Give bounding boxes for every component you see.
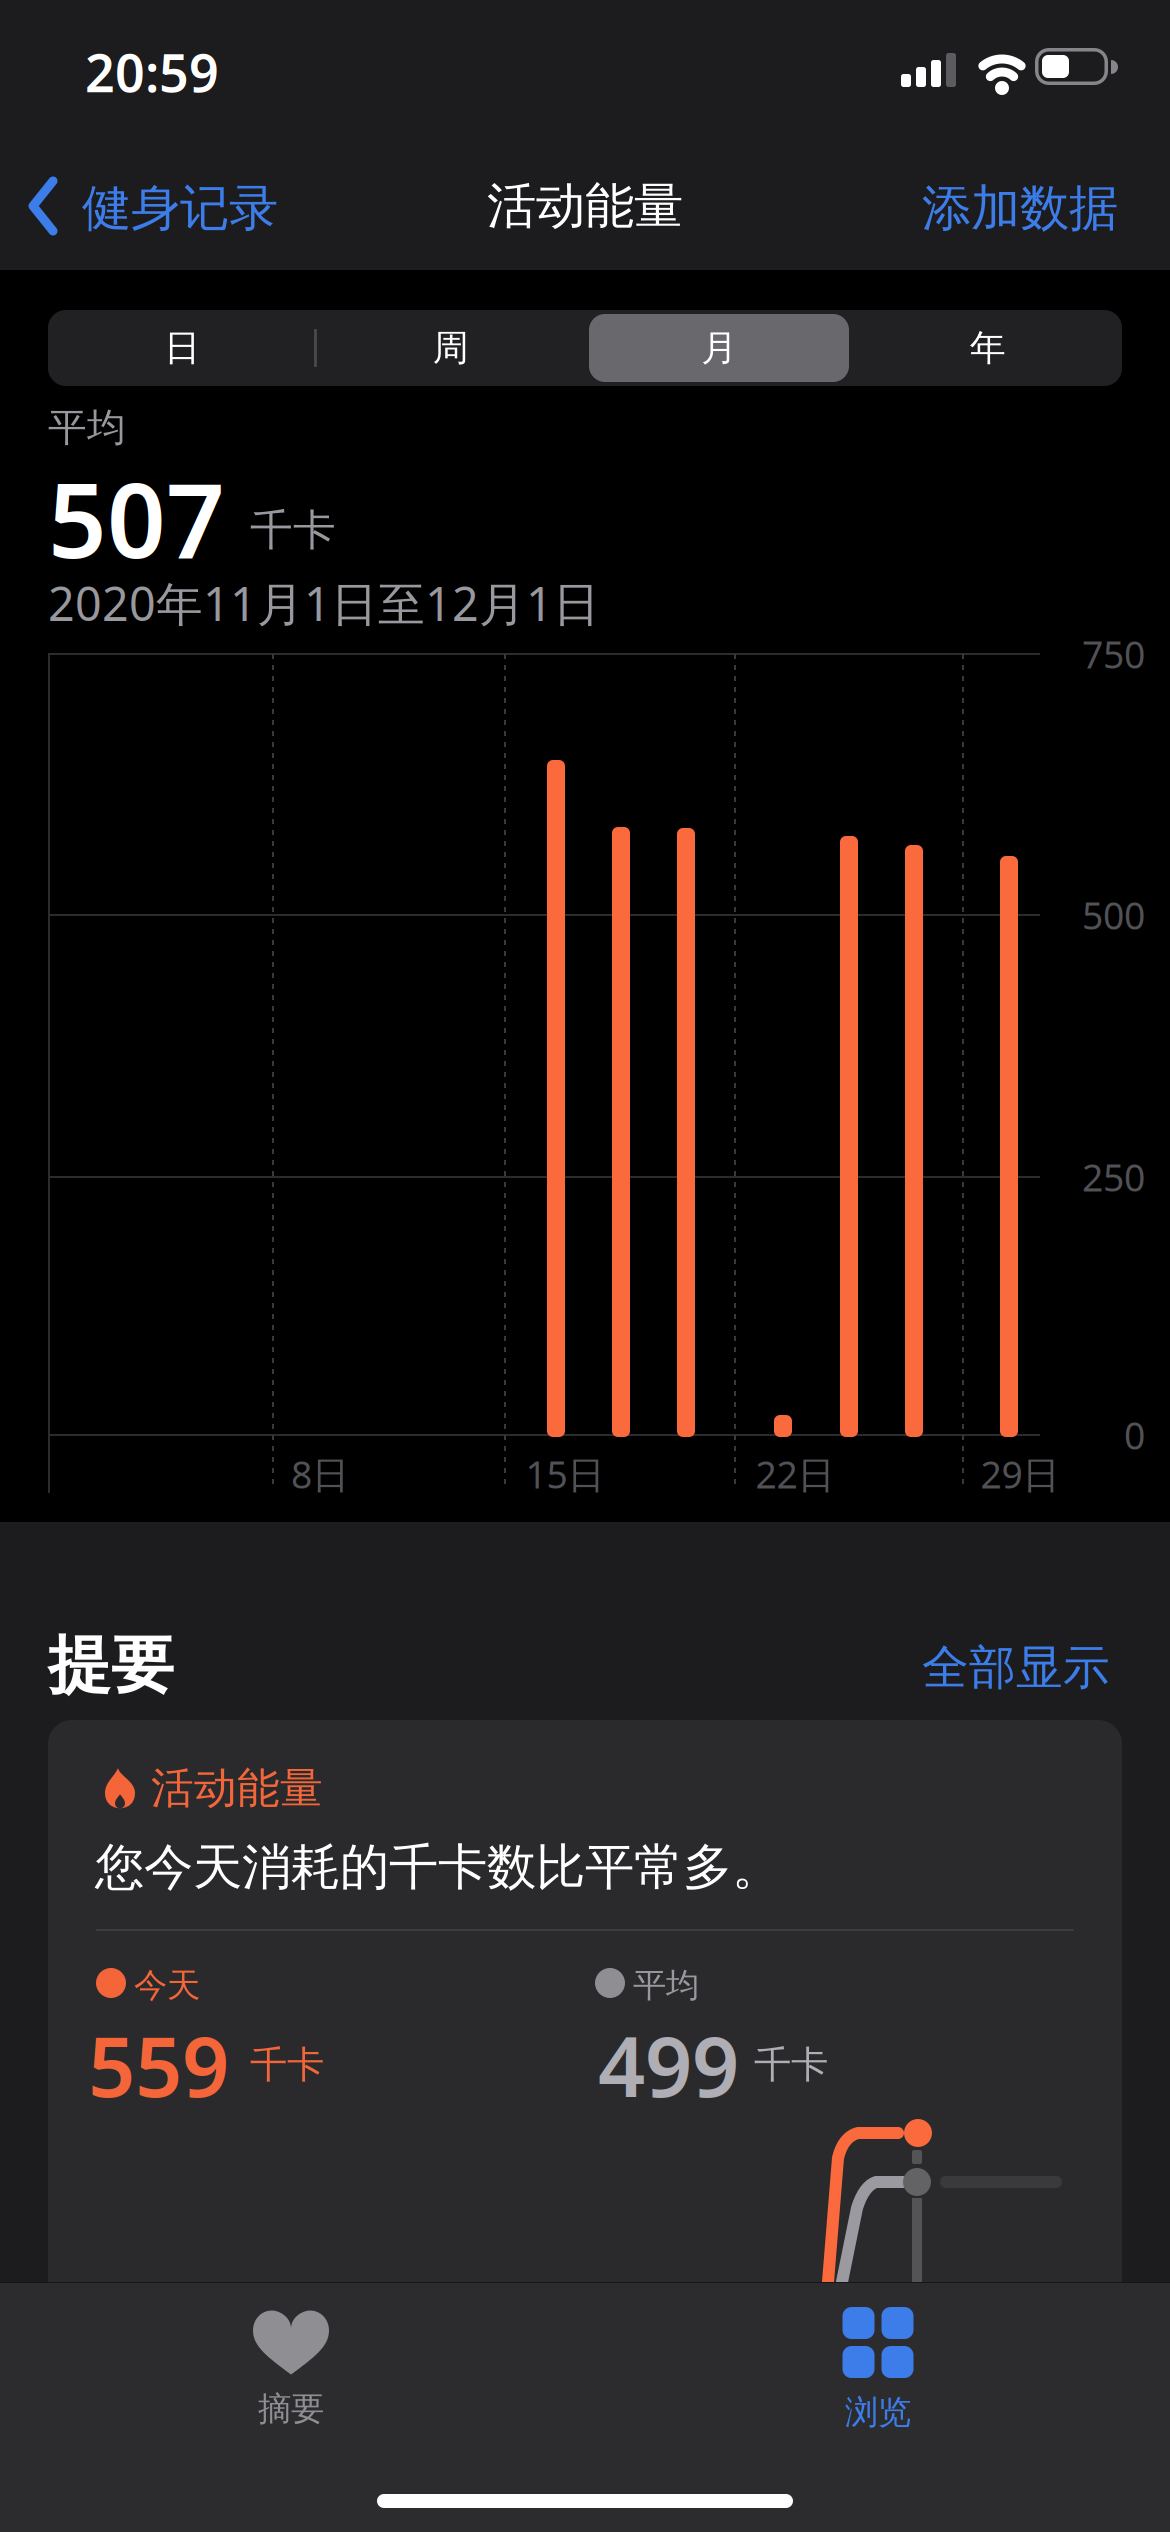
staticText: 千卡	[250, 504, 336, 556]
staticText: 千卡	[754, 2042, 828, 2088]
staticText: 15日	[525, 1449, 604, 1499]
button[interactable]: 全部显示	[922, 1639, 1110, 1696]
staticText: 499	[598, 2010, 739, 2120]
staticText: 日	[164, 326, 200, 370]
staticText: 8日	[291, 1449, 349, 1499]
staticText: 月	[701, 326, 737, 370]
button[interactable]: 活动能量	[48, 1720, 1122, 2332]
staticText: 2020年11月1日至12月1日	[48, 572, 600, 634]
staticText: 摘要	[258, 2388, 324, 2429]
button[interactable]: 周	[316, 310, 585, 386]
staticText: 750	[1082, 629, 1145, 679]
staticText: 全部显示	[922, 1639, 1110, 1696]
staticText: 20:59	[85, 37, 219, 107]
button[interactable]: 摘要	[91, 2300, 491, 2440]
staticText: 您今天消耗的千卡数比平常多。	[95, 1837, 781, 1898]
staticText: 千卡	[250, 2042, 324, 2088]
staticText: 507	[48, 450, 225, 586]
staticText: 250	[1082, 1152, 1145, 1202]
staticText: 添加数据	[922, 178, 1118, 239]
staticText: 平均	[48, 404, 126, 451]
staticText: 健身记录	[82, 178, 278, 239]
button[interactable]: 日	[48, 310, 316, 386]
staticText: 活动能量	[487, 176, 683, 236]
button[interactable]: 健身记录	[29, 179, 299, 237]
button[interactable]: 浏览	[678, 2300, 1078, 2440]
button[interactable]: 月	[585, 310, 853, 386]
button[interactable]: 年	[853, 310, 1122, 386]
staticText: 0	[1124, 1410, 1145, 1460]
staticText: 29日	[980, 1449, 1059, 1499]
staticText: 周	[433, 326, 469, 370]
staticText: 浏览	[845, 2392, 911, 2433]
staticText: 平均	[633, 1965, 699, 2006]
staticText: 提要	[48, 1627, 174, 1704]
staticText: 活动能量	[151, 1762, 323, 1814]
staticText: 22日	[755, 1449, 834, 1499]
staticText: 年	[970, 326, 1006, 370]
staticText: 500	[1082, 890, 1145, 940]
staticText: 559	[88, 2010, 229, 2120]
staticText: 今天	[134, 1965, 200, 2006]
button[interactable]: 添加数据	[922, 178, 1118, 239]
